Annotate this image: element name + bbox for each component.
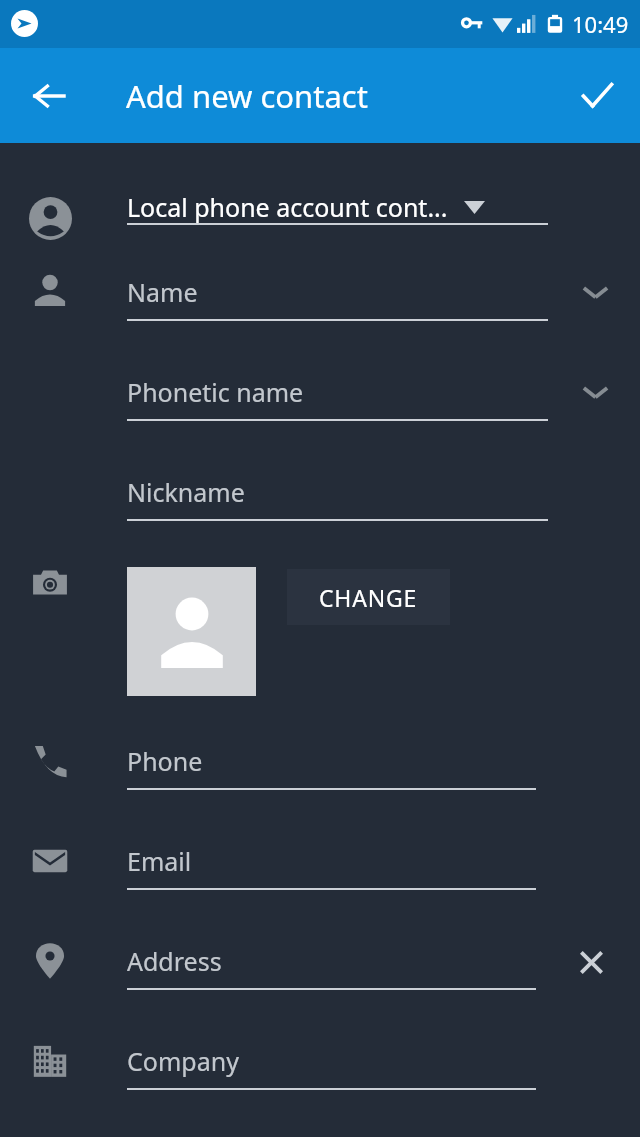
button[interactable]: Email — [127, 836, 536, 886]
button[interactable]: Expand name fields — [573, 270, 617, 314]
button[interactable]: CHANGE — [287, 569, 450, 625]
staticText: Address — [127, 944, 222, 978]
button[interactable]: Address — [127, 936, 536, 986]
staticText: 10:49 — [572, 9, 629, 39]
button[interactable]: Save contact — [568, 67, 626, 125]
other: Name — [26, 267, 74, 315]
button[interactable]: Back — [20, 67, 78, 125]
staticText: Name — [127, 275, 198, 309]
staticText: Add new contact — [126, 75, 368, 117]
staticText: Phone — [127, 744, 203, 778]
staticText: Local phone account cont... — [127, 190, 448, 224]
staticText: Nickname — [127, 475, 245, 509]
button[interactable]: Contact photo — [127, 567, 256, 696]
other: Address — [26, 937, 74, 985]
button[interactable]: Name — [127, 267, 548, 317]
staticText: Company — [127, 1044, 239, 1078]
button[interactable]: Company — [127, 1036, 536, 1086]
button[interactable]: Remove address — [566, 937, 616, 987]
other: Company — [26, 1037, 74, 1085]
staticText: Email — [127, 844, 192, 878]
button[interactable]: Phone — [127, 736, 536, 786]
other: Photo — [26, 558, 74, 606]
button[interactable]: Expand phonetic name — [573, 370, 617, 414]
button[interactable]: Nickname — [127, 467, 548, 517]
other: Phone — [26, 737, 74, 785]
staticText: Phonetic name — [127, 375, 304, 409]
other: Email — [26, 837, 74, 885]
button[interactable]: Local phone account cont... — [127, 185, 548, 229]
button[interactable]: Phonetic name — [127, 367, 548, 417]
staticText: CHANGE — [319, 582, 418, 613]
other: Account — [26, 194, 74, 242]
